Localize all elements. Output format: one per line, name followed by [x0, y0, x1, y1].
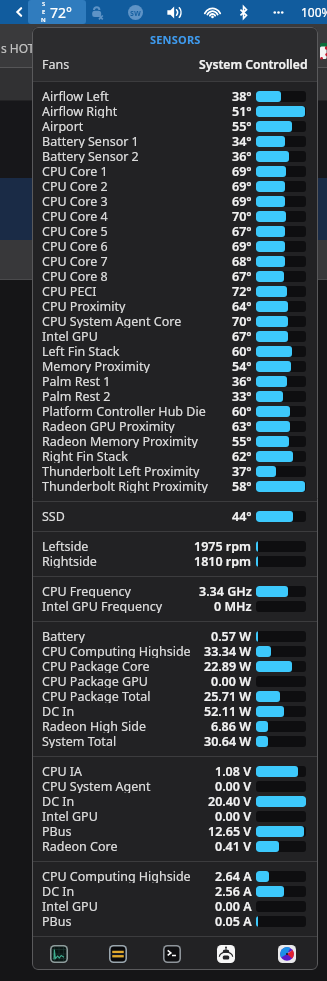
staticText: SSD — [42, 508, 65, 523]
staticText: PBus — [42, 913, 72, 928]
button[interactable]: Terminal — [159, 941, 185, 967]
staticText: 2.56 A — [215, 883, 252, 898]
button[interactable]: Palm Rest 2 — [32, 389, 318, 404]
button[interactable]: CPU Core 7 — [32, 254, 318, 269]
button[interactable]: CPU Package Core — [32, 659, 318, 674]
button[interactable]: CPU System Agent Core — [32, 314, 318, 329]
button[interactable]: DC In — [32, 884, 318, 899]
staticText: Left Fin Stack — [42, 343, 120, 358]
staticText: CPU Package Total — [42, 688, 151, 703]
button[interactable]: Memory Proximity — [32, 359, 318, 374]
staticText: Airflow Left — [42, 88, 109, 103]
button[interactable]: DC In — [32, 794, 318, 809]
button[interactable]: CPU Core 3 — [32, 194, 318, 209]
button[interactable]: Radeon GPU Proximity — [32, 419, 318, 434]
staticText: 38° — [232, 88, 252, 103]
staticText: 0.00 V — [215, 778, 252, 793]
staticText: CPU Core 1 — [42, 163, 108, 178]
button[interactable]: Battery Sensor 1 — [32, 134, 318, 149]
button[interactable]: System widget — [105, 941, 131, 967]
staticText: 30.64 W — [204, 733, 252, 748]
button[interactable]: CPU Computing Highside — [32, 644, 318, 659]
button[interactable]: CPU Package Total — [32, 689, 318, 704]
button[interactable]: Intel GPU — [32, 809, 318, 824]
button[interactable]: System Total — [32, 734, 318, 749]
staticText: Battery Sensor 2 — [42, 148, 139, 163]
staticText: DC In — [42, 703, 75, 718]
button[interactable]: Airflow Left — [32, 89, 318, 104]
button[interactable]: Switch — [124, 0, 146, 24]
button[interactable]: Right Fin Stack — [32, 449, 318, 464]
staticText: CPU Computing Highside — [42, 643, 191, 658]
button[interactable]: Browser — [274, 941, 300, 967]
button[interactable]: Robot app — [213, 941, 239, 967]
button[interactable]: Platform Controller Hub Die — [32, 404, 318, 419]
button[interactable]: CPU Core 1 — [32, 164, 318, 179]
button[interactable]: Intel GPU — [32, 899, 318, 914]
button[interactable]: Bluetooth — [232, 0, 254, 24]
button[interactable]: CPU Core 2 — [32, 179, 318, 194]
button[interactable]: Airflow Right — [32, 104, 318, 119]
button[interactable]: CPU Computing Highside — [32, 869, 318, 884]
button[interactable]: SSD — [32, 509, 318, 524]
staticText: CPU Core 4 — [42, 208, 108, 223]
staticText: 100% — [301, 4, 327, 20]
staticText: 6.86 W — [211, 718, 252, 733]
staticText: N — [41, 16, 46, 24]
staticText: 0.41 V — [215, 838, 252, 853]
button[interactable]: CPU PECI — [32, 284, 318, 299]
button[interactable]: Battery Sensor 2 — [32, 149, 318, 164]
button[interactable]: 100% — [301, 0, 327, 24]
button[interactable]: CPU Core 8 — [32, 269, 318, 284]
button[interactable]: Palm Rest 1 — [32, 374, 318, 389]
staticText: CPU Proximity — [42, 298, 126, 313]
button[interactable]: CPU Package GPU — [32, 674, 318, 689]
button[interactable]: Radeon High Side — [32, 719, 318, 734]
staticText: CPU PECI — [42, 283, 97, 298]
button[interactable]: Thunderbolt Right Proximity — [32, 479, 318, 494]
staticText: Palm Rest 2 — [42, 388, 111, 403]
button[interactable]: CPU Frequency — [32, 584, 318, 599]
staticText: DC In — [42, 793, 75, 808]
staticText: Intel GPU Frequency — [42, 598, 163, 613]
button[interactable]: Volume — [163, 0, 185, 24]
staticText: Airflow Right — [42, 103, 118, 118]
button[interactable]: Airport — [32, 119, 318, 134]
button[interactable]: Thunderbolt Left Proximity — [32, 464, 318, 479]
button[interactable]: PBus — [32, 914, 318, 929]
button[interactable]: Left Fin Stack — [32, 344, 318, 359]
button[interactable]: Radeon Memory Proximity — [32, 434, 318, 449]
button[interactable]: S — [28, 0, 86, 24]
button[interactable]: Back — [10, 0, 28, 24]
button[interactable]: CPU Core 4 — [32, 209, 318, 224]
staticText: Intel GPU — [42, 328, 98, 343]
button[interactable]: PBus — [32, 824, 318, 839]
staticText: 3.34 GHz — [199, 583, 252, 598]
button[interactable]: Wi-Fi — [201, 0, 223, 24]
button[interactable]: Battery — [32, 629, 318, 644]
staticText: 25.71 W — [204, 688, 252, 703]
staticText: 60° — [232, 343, 252, 358]
button[interactable]: CPU Core 6 — [32, 239, 318, 254]
staticText: Leftside — [42, 538, 89, 553]
button[interactable]: CPU Proximity — [32, 299, 318, 314]
button[interactable]: CPU IA — [32, 764, 318, 779]
button[interactable]: Intel GPU Frequency — [32, 599, 318, 614]
staticText: CPU Core 6 — [42, 238, 108, 253]
staticText: CPU Core 5 — [42, 223, 108, 238]
staticText: Battery Sensor 1 — [42, 133, 139, 148]
button[interactable]: Stats app — [46, 941, 72, 967]
button[interactable]: CPU Core 5 — [32, 224, 318, 239]
button[interactable]: CPU System Agent — [32, 779, 318, 794]
button[interactable]: Screen lock — [86, 0, 108, 24]
staticText: 1.08 V — [215, 763, 252, 778]
staticText: 0.00 W — [211, 673, 252, 688]
staticText: sw — [130, 7, 141, 18]
button[interactable]: Radeon Core — [32, 839, 318, 854]
button[interactable]: Control center — [267, 0, 289, 24]
button[interactable]: Leftside — [32, 539, 318, 554]
staticText: 60° — [232, 403, 252, 418]
button[interactable]: Rightside — [32, 554, 318, 569]
button[interactable]: Intel GPU — [32, 329, 318, 344]
button[interactable]: DC In — [32, 704, 318, 719]
